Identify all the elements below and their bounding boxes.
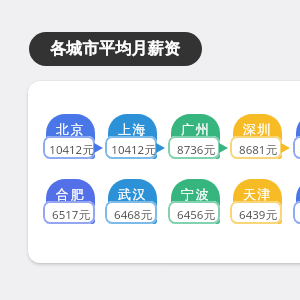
staticText: 8681元: [239, 142, 277, 158]
staticText: 各城市平均月薪资: [50, 39, 181, 59]
staticText: 合肥: [56, 186, 85, 202]
staticText: 6439元: [239, 207, 277, 223]
staticText: 6468元: [114, 207, 152, 223]
staticText: 8736元: [177, 142, 215, 158]
button[interactable]: 武汉: [105, 178, 157, 224]
staticText: 10412元: [111, 142, 156, 158]
staticText: 深圳: [243, 121, 272, 137]
staticText: 10412元: [49, 142, 94, 158]
button[interactable]: 北京: [43, 113, 95, 159]
button[interactable]: 南京: [293, 178, 300, 224]
button[interactable]: 深圳: [230, 113, 282, 159]
button[interactable]: 各城市平均月薪资: [29, 32, 202, 66]
staticText: 广州: [181, 121, 210, 137]
staticText: 宁波: [181, 186, 210, 202]
staticText: 武汉: [118, 186, 147, 202]
staticText: 6517元: [52, 207, 90, 223]
staticText: 6456元: [177, 207, 215, 223]
staticText: 天津: [243, 186, 272, 202]
button[interactable]: 杭州: [293, 113, 300, 159]
staticText: 上海: [118, 121, 147, 137]
button[interactable]: 宁波: [168, 178, 220, 224]
button[interactable]: 天津: [230, 178, 282, 224]
button[interactable]: 广州: [168, 113, 220, 159]
staticText: 北京: [56, 121, 85, 137]
button[interactable]: 上海: [105, 113, 157, 159]
button[interactable]: 合肥: [43, 178, 95, 224]
